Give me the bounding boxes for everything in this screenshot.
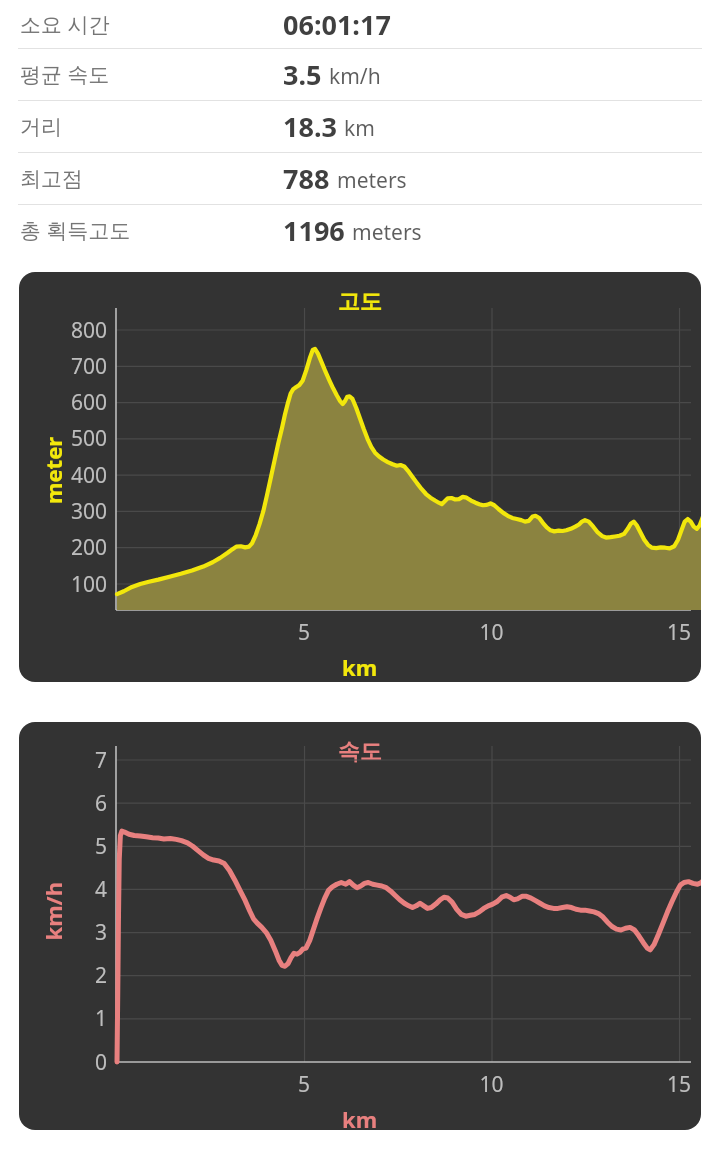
staticText: 소요 시간: [20, 10, 110, 39]
button[interactable]: 속도 차트: [19, 722, 701, 1130]
staticText: meters: [337, 166, 407, 195]
staticText: km: [344, 114, 375, 143]
staticText: 06:01:17: [283, 6, 391, 43]
staticText: 평균 속도: [20, 60, 110, 89]
button[interactable]: 소요 시간: [0, 0, 720, 48]
staticText: km/h: [329, 62, 381, 91]
staticText: 3.5: [283, 56, 322, 93]
button[interactable]: 거리: [0, 101, 720, 152]
staticText: 18.3: [283, 108, 337, 145]
button[interactable]: 최고점: [0, 153, 720, 204]
button[interactable]: 총 획득고도: [0, 205, 720, 256]
staticText: meters: [352, 218, 422, 247]
staticText: 거리: [20, 114, 62, 140]
staticText: 788: [283, 160, 330, 197]
staticText: 최고점: [20, 166, 83, 192]
staticText: 1196: [283, 212, 345, 249]
button[interactable]: 고도 차트: [19, 272, 701, 682]
staticText: 총 획득고도: [20, 216, 131, 245]
button[interactable]: 평균 속도: [0, 49, 720, 100]
